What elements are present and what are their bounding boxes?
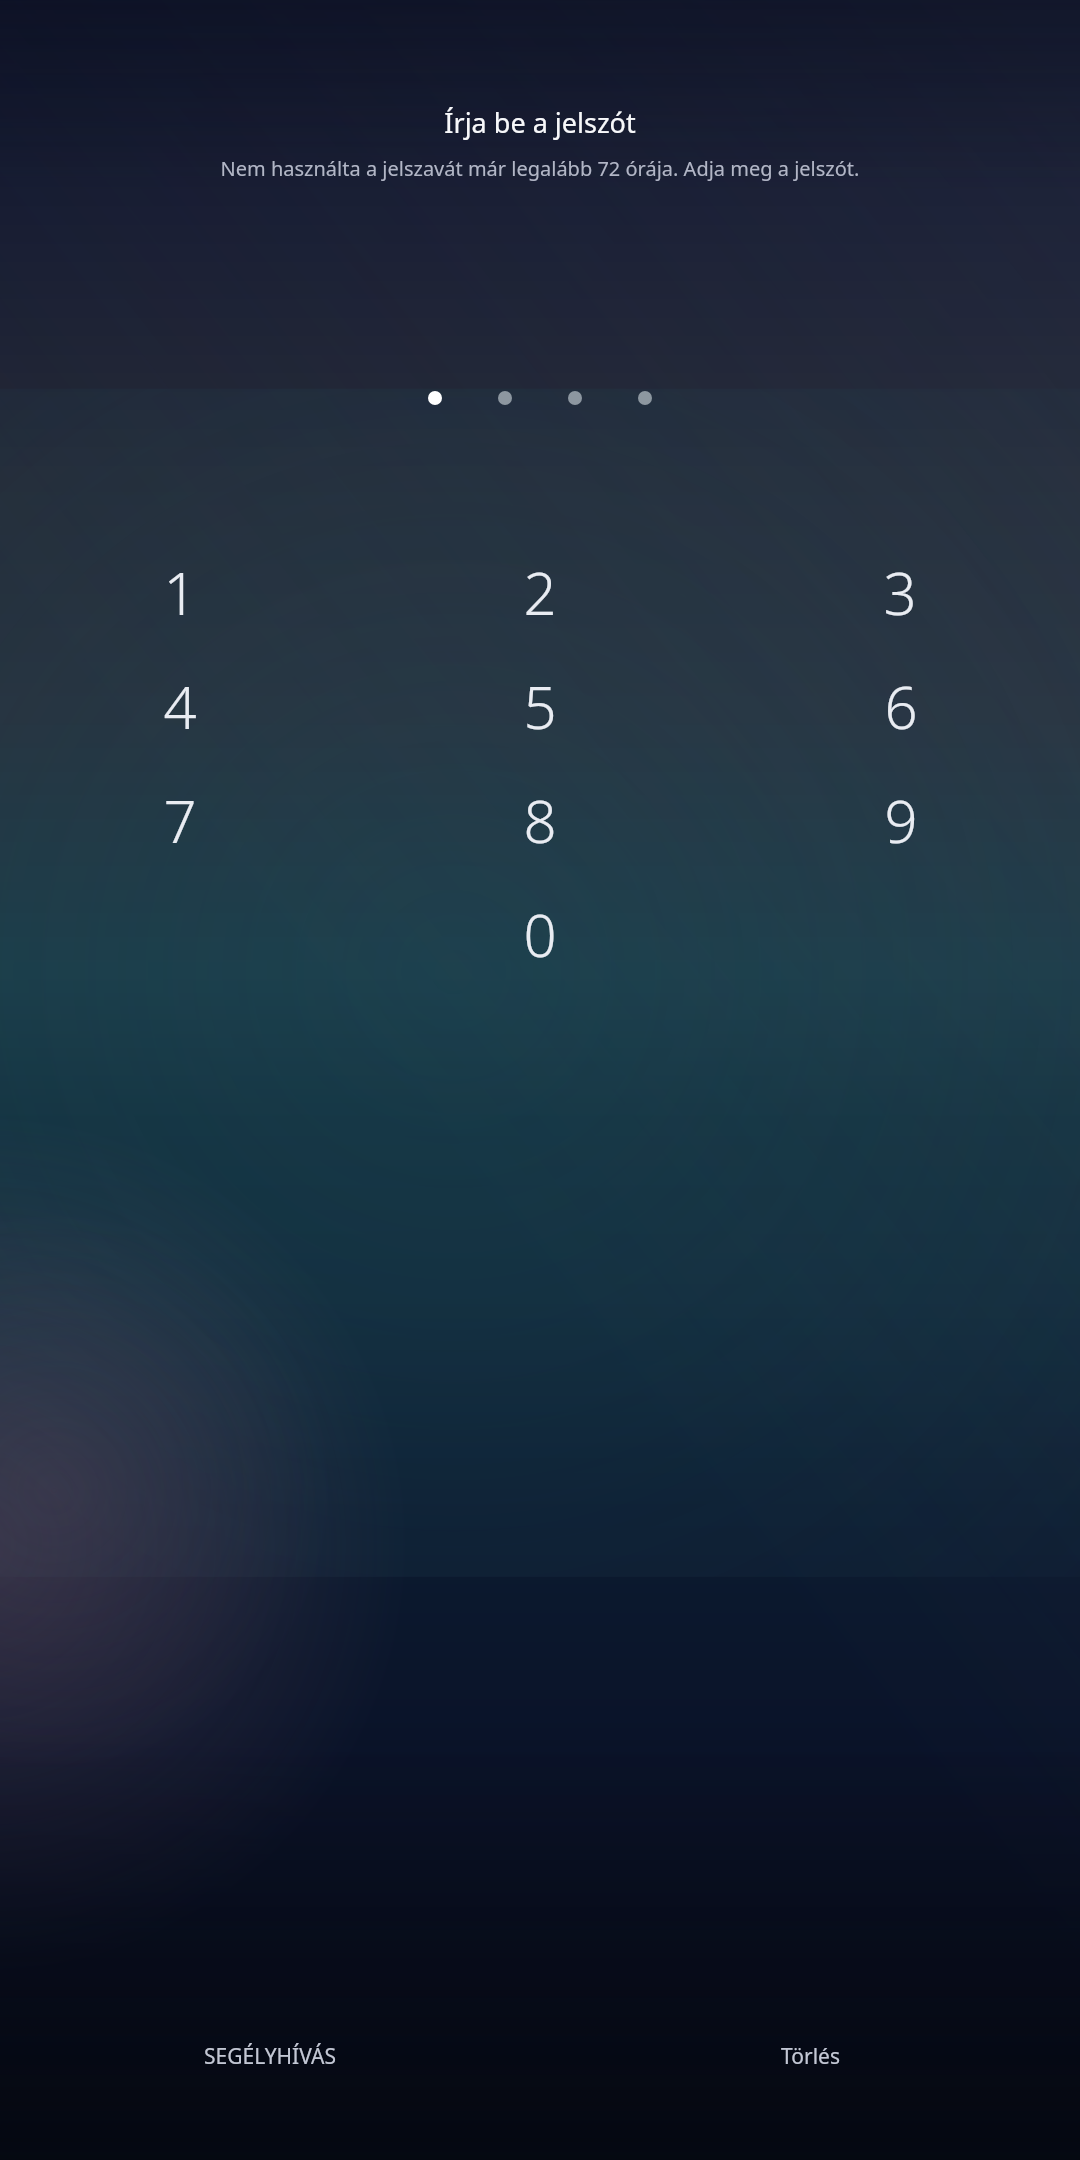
staticText: Nem használta a jelszavát már legalább 7… [2,155,1078,182]
button[interactable]: 4 [0,667,360,752]
staticText: 7 [163,781,197,860]
button[interactable]: 3 [720,553,1080,638]
staticText: 3 [883,553,917,632]
button[interactable]: 9 [720,781,1080,866]
button[interactable]: 8 [360,781,720,866]
button[interactable]: 1 [0,553,360,638]
button[interactable]: 2 [360,553,720,638]
staticText: 0 [523,895,557,974]
button[interactable]: Törlés [540,2012,1080,2100]
button[interactable]: 0 [360,895,720,980]
button[interactable]: 6 [720,667,1080,752]
staticText: Törlés [781,2042,840,2071]
staticText: 4 [163,667,197,746]
staticText: 2 [523,553,557,632]
button[interactable]: 7 [0,781,360,866]
staticText: SEGÉLYHÍVÁS [204,2042,336,2071]
staticText: Írja be a jelszót [0,104,1080,141]
staticText: 9 [884,781,918,860]
staticText: 8 [523,781,557,860]
staticText: 1 [163,553,197,632]
staticText: 6 [884,667,918,746]
button[interactable]: 5 [360,667,720,752]
button[interactable]: SEGÉLYHÍVÁS [0,2012,540,2100]
staticText: 5 [523,667,557,746]
